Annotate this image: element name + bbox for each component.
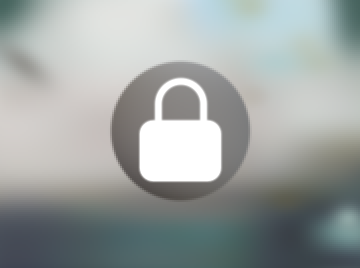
button[interactable]: Content locked: [110, 61, 249, 200]
